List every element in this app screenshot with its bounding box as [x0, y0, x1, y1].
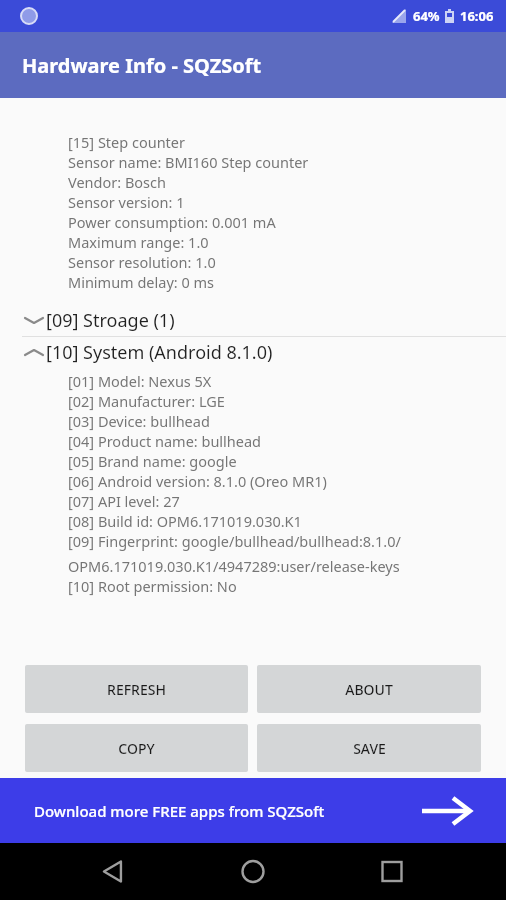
button[interactable]: SAVE	[257, 724, 481, 772]
staticText: Hardware Info - SQZSoft	[22, 52, 262, 79]
staticText: [10] System (Android 8.1.0)	[46, 340, 273, 365]
staticText: ABOUT	[345, 680, 393, 699]
button[interactable]: [09] Stroage (1)	[0, 305, 506, 336]
staticText: Sensor resolution: 1.0	[68, 252, 492, 272]
staticText: COPY	[118, 739, 155, 758]
staticText: Sensor name: BMI160 Step counter	[68, 152, 492, 172]
staticText: [02] Manufacturer: LGE	[68, 391, 492, 411]
staticText: [09] Stroage (1)	[46, 308, 175, 333]
staticText: [01] Model: Nexus 5X	[68, 371, 492, 391]
staticText: [06] Android version: 8.1.0 (Oreo MR1)	[68, 471, 492, 491]
staticText: [03] Device: bullhead	[68, 411, 492, 431]
staticText: [07] API level: 27	[68, 491, 492, 511]
staticText: Power consumption: 0.001 mA	[68, 212, 492, 232]
staticText: Maximum range: 1.0	[68, 232, 492, 252]
staticText: Sensor version: 1	[68, 192, 492, 212]
staticText: [08] Build id: OPM6.171019.030.K1	[68, 511, 492, 531]
staticText: [05] Brand name: google	[68, 451, 492, 471]
staticText: Vendor: Bosch	[68, 172, 492, 192]
button[interactable]: REFRESH	[25, 665, 248, 713]
staticText: Minimum delay: 0 ms	[68, 272, 492, 292]
staticText: Download more FREE apps from SQZSoft	[34, 801, 325, 821]
staticText: 64%	[413, 7, 440, 25]
other: Go to SQZSoft apps	[422, 796, 470, 826]
staticText: [04] Product name: bullhead	[68, 431, 492, 451]
staticText: SAVE	[353, 739, 386, 758]
button[interactable]: ABOUT	[257, 665, 481, 713]
staticText: [15] Step counter	[68, 132, 492, 152]
button[interactable]: Download more FREE apps from SQZSoft	[0, 778, 506, 843]
staticText: [10] Root permission: No	[68, 576, 492, 596]
button[interactable]: COPY	[25, 724, 248, 772]
staticText: REFRESH	[107, 680, 166, 699]
button[interactable]: [10] System (Android 8.1.0)	[0, 337, 506, 368]
staticText: 16:06	[460, 7, 494, 25]
staticText: [09] Fingerprint: google/bullhead/bullhe…	[68, 531, 492, 576]
